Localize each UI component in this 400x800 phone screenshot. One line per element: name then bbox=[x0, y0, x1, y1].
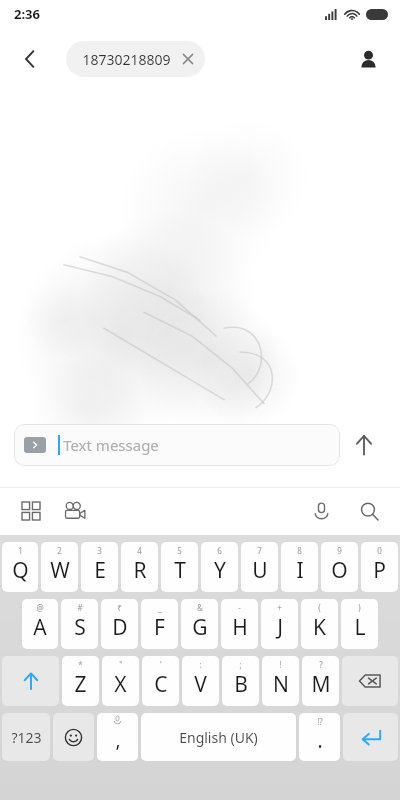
staticText: 18730218809 bbox=[82, 50, 171, 69]
staticText: ; bbox=[239, 659, 242, 670]
button[interactable]: 6 bbox=[201, 542, 238, 592]
button[interactable]: ; bbox=[222, 656, 259, 706]
button[interactable]: 8 bbox=[281, 542, 318, 592]
staticText: V bbox=[194, 670, 207, 699]
button[interactable]: backspace bbox=[342, 656, 398, 706]
button[interactable]: 0 bbox=[361, 542, 398, 592]
staticText: Text message bbox=[63, 435, 159, 455]
staticText: ' bbox=[160, 659, 162, 670]
staticText: 2:36 bbox=[14, 5, 40, 23]
staticText: !? bbox=[317, 716, 323, 727]
button[interactable]: 4 bbox=[121, 542, 158, 592]
button[interactable]: !? bbox=[299, 713, 340, 761]
staticText: - bbox=[238, 602, 241, 613]
button[interactable]: 2 bbox=[41, 542, 78, 592]
staticText: S bbox=[74, 613, 86, 642]
button[interactable]: ₹ bbox=[101, 599, 138, 649]
staticText: 0 bbox=[377, 545, 382, 556]
button[interactable]: ) bbox=[341, 599, 378, 649]
button[interactable]: " bbox=[102, 656, 139, 706]
staticText: & bbox=[197, 602, 203, 613]
button[interactable]: 3 bbox=[81, 542, 118, 592]
staticText: J bbox=[277, 613, 283, 642]
staticText: ?123 bbox=[11, 728, 42, 747]
button[interactable]: ? bbox=[302, 656, 339, 706]
staticText: L bbox=[354, 613, 366, 642]
button[interactable]: 7 bbox=[241, 542, 278, 592]
button[interactable]: Back bbox=[8, 37, 52, 81]
staticText: 3 bbox=[97, 545, 102, 556]
staticText: M bbox=[311, 670, 331, 699]
staticText: ? bbox=[319, 659, 323, 670]
staticText: X bbox=[114, 670, 127, 699]
staticText: P bbox=[373, 556, 386, 585]
staticText: # bbox=[77, 602, 83, 613]
staticText: Q bbox=[12, 556, 29, 585]
button[interactable]: Send bbox=[340, 421, 388, 469]
staticText: : bbox=[199, 659, 202, 670]
button[interactable]: Apps bbox=[14, 494, 48, 528]
staticText: ( bbox=[318, 602, 321, 613]
staticText: * bbox=[78, 659, 83, 670]
button[interactable]: Voice input bbox=[304, 494, 338, 528]
button[interactable]: 1 bbox=[2, 542, 38, 592]
staticText: 5 bbox=[177, 545, 182, 556]
button[interactable]: 9 bbox=[321, 542, 358, 592]
staticText: 2 bbox=[57, 545, 62, 556]
staticText: H bbox=[232, 613, 248, 642]
button[interactable]: Text message bbox=[14, 424, 340, 466]
button[interactable]: + bbox=[261, 599, 298, 649]
staticText: 6 bbox=[217, 545, 222, 556]
staticText: D bbox=[112, 613, 128, 642]
staticText: English (UK) bbox=[179, 728, 258, 747]
button[interactable]: - bbox=[221, 599, 258, 649]
staticText: @ bbox=[36, 602, 44, 613]
staticText: 7 bbox=[257, 545, 262, 556]
staticText: C bbox=[154, 670, 168, 699]
button[interactable]: emoji bbox=[53, 713, 94, 761]
button[interactable]: _ bbox=[141, 599, 178, 649]
staticText: A bbox=[33, 613, 47, 642]
button[interactable]: Contact bbox=[346, 37, 390, 81]
button[interactable]: Search bbox=[352, 494, 386, 528]
button[interactable]: : bbox=[182, 656, 219, 706]
staticText: F bbox=[154, 613, 165, 642]
button[interactable]: ! bbox=[262, 656, 299, 706]
button[interactable]: 18730218809 bbox=[66, 41, 205, 77]
button[interactable]: ?123 bbox=[2, 713, 50, 761]
staticText: , bbox=[115, 727, 121, 753]
staticText: Z bbox=[74, 670, 87, 699]
staticText: 9 bbox=[337, 545, 342, 556]
staticText: _ bbox=[158, 602, 162, 613]
button[interactable]: enter bbox=[343, 713, 398, 761]
staticText: ) bbox=[358, 602, 361, 613]
staticText: " bbox=[119, 659, 123, 670]
staticText: T bbox=[174, 556, 186, 585]
staticText: U bbox=[252, 556, 268, 585]
staticText: I bbox=[296, 556, 304, 585]
staticText: O bbox=[331, 556, 348, 585]
button[interactable]: # bbox=[61, 599, 98, 649]
staticText: Y bbox=[214, 556, 226, 585]
button[interactable]: 5 bbox=[161, 542, 198, 592]
button[interactable]: Video bbox=[58, 494, 92, 528]
staticText: E bbox=[94, 556, 106, 585]
button[interactable]: * bbox=[62, 656, 99, 706]
staticText: W bbox=[50, 556, 70, 585]
staticText: ₹ bbox=[117, 602, 122, 613]
button[interactable]: shift bbox=[2, 656, 59, 706]
staticText: G bbox=[192, 613, 208, 642]
button[interactable]: @ bbox=[22, 599, 58, 649]
staticText: ! bbox=[279, 659, 282, 670]
staticText: B bbox=[234, 670, 248, 699]
staticText: + bbox=[277, 602, 282, 613]
button[interactable]: English (UK) bbox=[141, 713, 296, 761]
button[interactable]: & bbox=[181, 599, 218, 649]
button[interactable]: , bbox=[97, 713, 138, 761]
staticText: N bbox=[273, 670, 289, 699]
button[interactable]: ( bbox=[301, 599, 338, 649]
staticText: 8 bbox=[297, 545, 302, 556]
staticText: K bbox=[313, 613, 326, 642]
button[interactable]: ' bbox=[142, 656, 179, 706]
staticText: . bbox=[317, 726, 323, 755]
